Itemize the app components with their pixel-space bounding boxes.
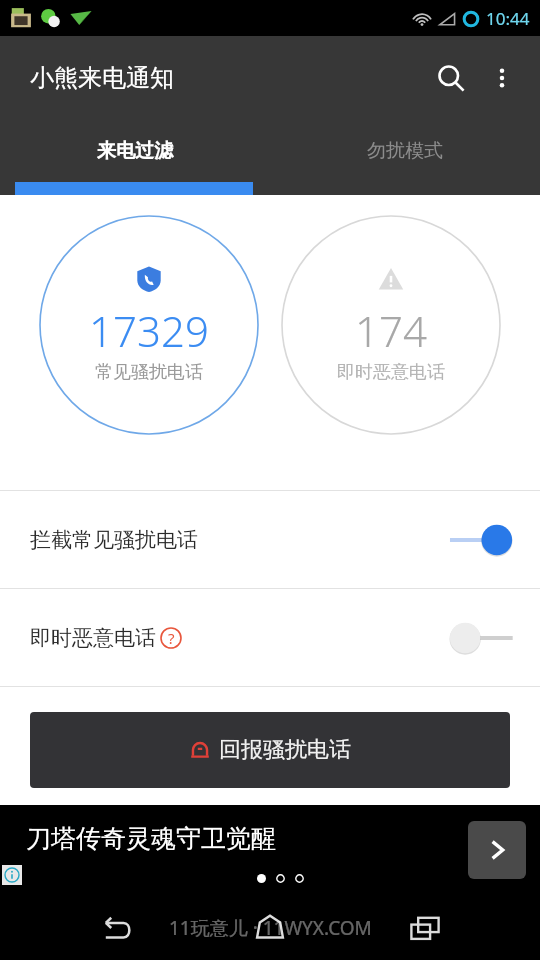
button[interactable]: Back — [77, 898, 155, 958]
staticText: 即时恶意电话 — [30, 625, 156, 651]
staticText: 常见骚扰电话 — [95, 361, 203, 384]
staticText: 17329 — [89, 302, 209, 359]
staticText: 11玩意儿 · 11WYX.COM — [169, 915, 372, 941]
button[interactable]: 来电过滤 — [0, 120, 270, 181]
staticText: 10:44 — [486, 7, 530, 30]
button[interactable]: 174 — [281, 215, 501, 435]
button[interactable]: Search — [424, 51, 478, 105]
button[interactable]: 勿扰模式 — [270, 120, 540, 181]
button[interactable]: 刀塔传奇灵魂守卫觉醒 — [0, 805, 540, 895]
button[interactable]: Ad info — [2, 865, 22, 885]
staticText: 刀塔传奇灵魂守卫觉醒 — [26, 823, 276, 854]
button[interactable]: 即时恶意电话 — [0, 589, 540, 686]
staticText: 174 — [355, 302, 427, 359]
button[interactable]: Recent apps — [386, 898, 464, 958]
staticText: ? — [168, 628, 175, 648]
button[interactable]: Next ad — [468, 821, 526, 879]
button[interactable]: 回报骚扰电话 — [30, 712, 510, 788]
button[interactable]: Home — [231, 898, 309, 958]
staticText: 回报骚扰电话 — [219, 736, 351, 764]
staticText: 即时恶意电话 — [337, 361, 445, 384]
staticText: 拦截常见骚扰电话 — [30, 527, 198, 553]
button[interactable]: Off — [448, 621, 514, 655]
button[interactable]: On — [448, 523, 514, 557]
staticText: 小熊来电通知 — [30, 63, 174, 93]
staticText: 来电过滤 — [97, 139, 173, 163]
staticText: 勿扰模式 — [367, 139, 443, 163]
button[interactable]: More options — [478, 54, 526, 102]
button[interactable]: 拦截常见骚扰电话 — [0, 491, 540, 588]
button[interactable]: 17329 — [39, 215, 259, 435]
